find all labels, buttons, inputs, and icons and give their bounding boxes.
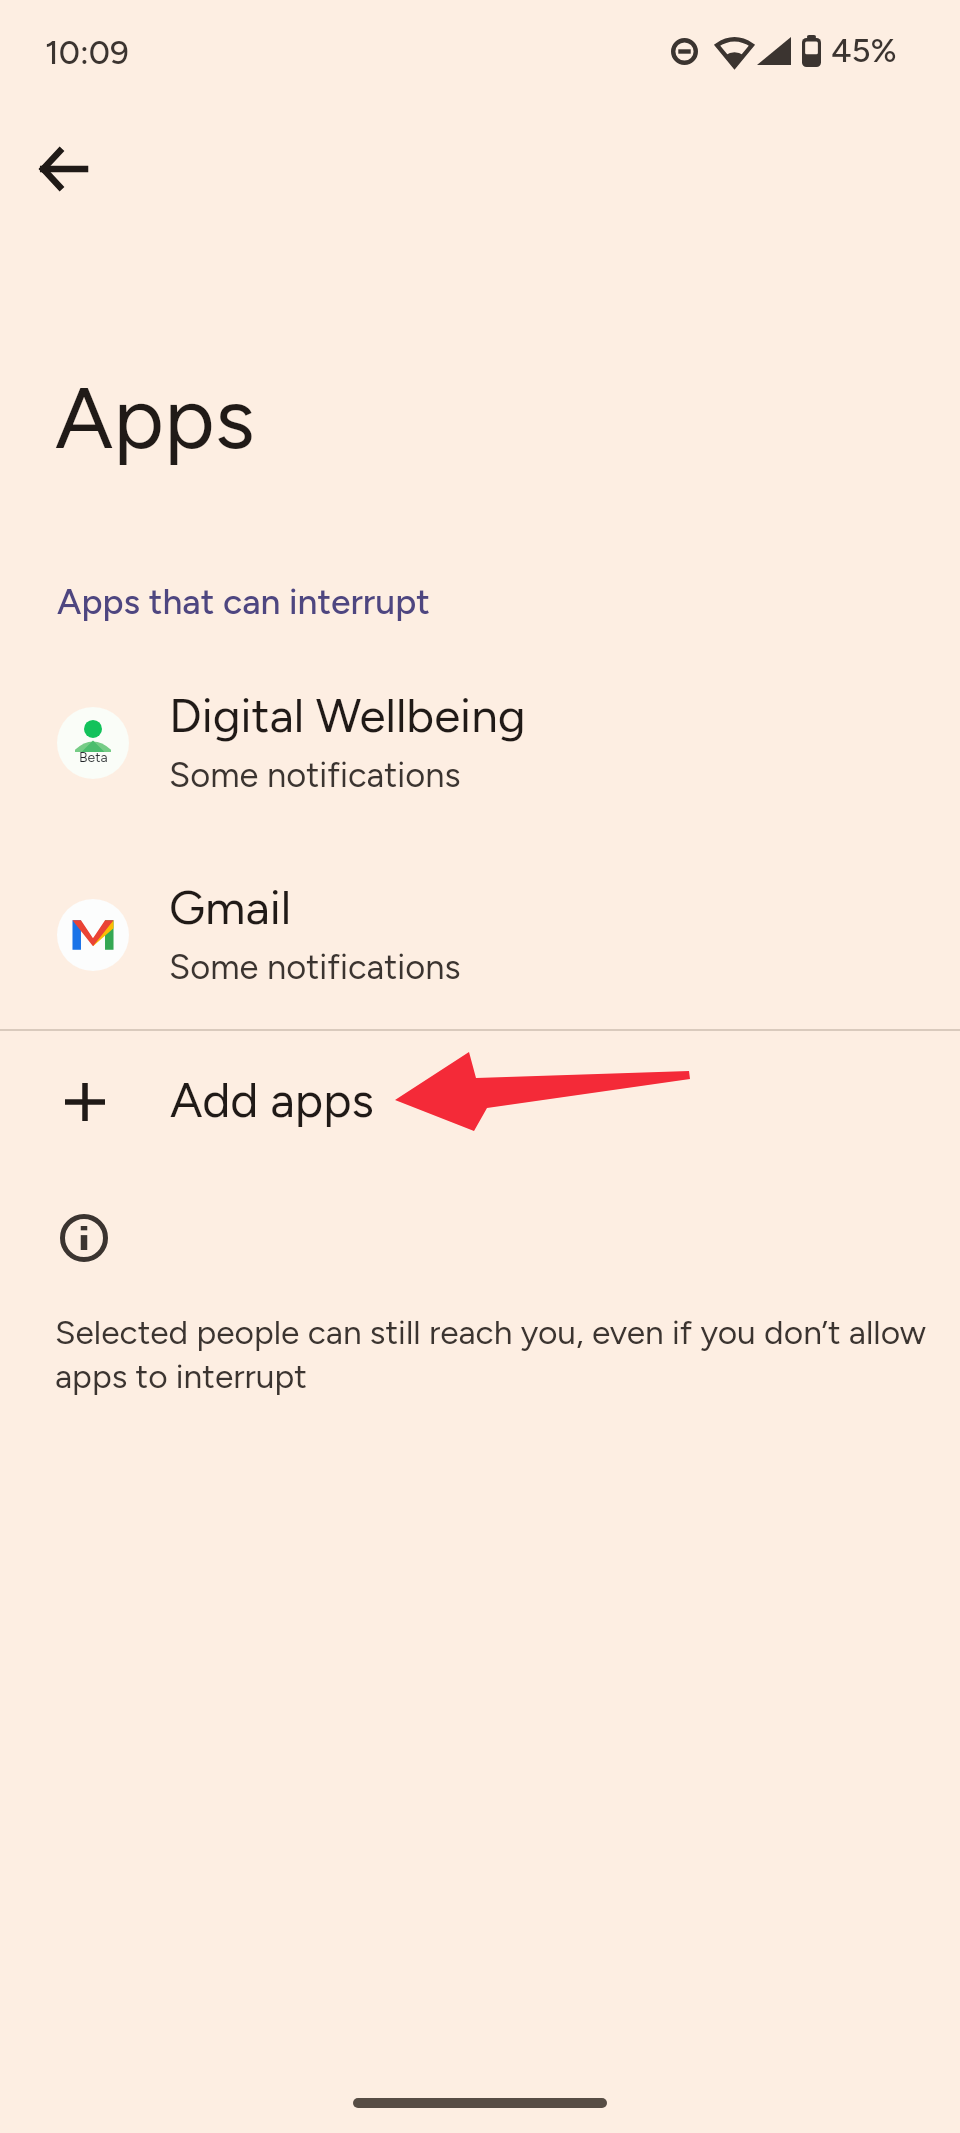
- staticText: Selected people can still reach you, eve…: [55, 1309, 960, 1397]
- staticText: Apps that can interrupt: [57, 580, 430, 623]
- staticText: Some notifications: [169, 946, 461, 987]
- staticText: 45%: [831, 31, 897, 71]
- button[interactable]: Beta: [0, 664, 960, 856]
- staticText: Some notifications: [169, 754, 461, 795]
- staticText: 10:09: [45, 33, 129, 73]
- button[interactable]: Add apps: [0, 1055, 960, 1149]
- button[interactable]: Back: [14, 121, 110, 217]
- staticText: Apps: [55, 366, 255, 469]
- staticText: Gmail: [169, 879, 292, 936]
- staticText: Beta: [79, 749, 108, 766]
- button[interactable]: Gmail: [0, 856, 960, 1048]
- staticText: Digital Wellbeing: [169, 687, 526, 744]
- staticText: Add apps: [170, 1071, 374, 1129]
